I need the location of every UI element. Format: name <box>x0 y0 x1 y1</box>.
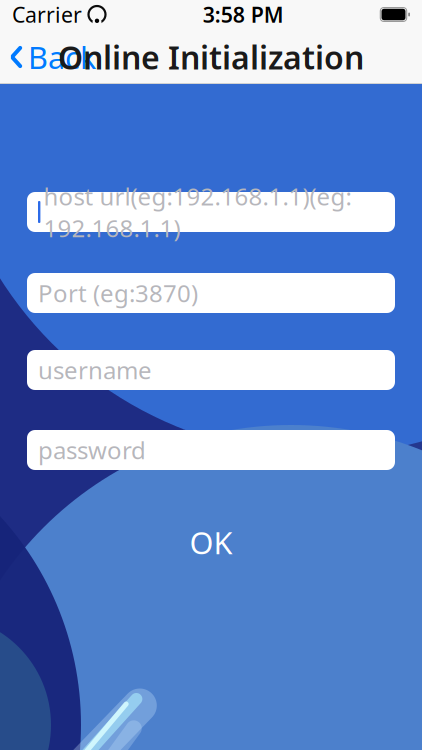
button[interactable]: OK <box>163 513 258 572</box>
button[interactable]: Back <box>0 29 102 85</box>
staticText: Carrier <box>12 0 82 29</box>
staticText: OK <box>189 522 232 563</box>
staticText: password <box>38 434 146 466</box>
button[interactable]: Port (eg:3870) <box>27 273 395 313</box>
button[interactable]: password <box>27 430 395 470</box>
staticText: 3:58 PM <box>203 0 284 29</box>
staticText: Online Initialization <box>58 36 364 78</box>
staticText: Port (eg:3870) <box>38 277 198 309</box>
staticText: Back <box>28 37 96 77</box>
button[interactable]: host url(eg:192.168.1.1)(eg:192.168.1.1) <box>27 192 395 232</box>
staticText: host url(eg:192.168.1.1)(eg:192.168.1.1) <box>43 180 351 244</box>
staticText: username <box>38 354 152 386</box>
button[interactable]: username <box>27 350 395 390</box>
